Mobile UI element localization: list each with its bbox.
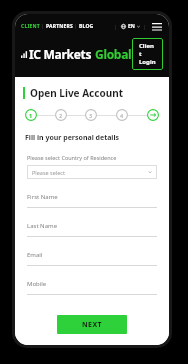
button[interactable]: PARTNERS [46,23,73,30]
staticText: Email [27,251,43,259]
button[interactable]: Last Name [27,222,157,237]
button[interactable]: Mobile [27,280,157,295]
staticText: Global [95,46,132,62]
staticText: Please select [32,169,65,176]
staticText: 2 [59,112,63,119]
staticText: Please select Country of Residence [27,154,117,161]
button[interactable]: Email [27,251,157,266]
staticText: 4 [120,112,124,119]
button[interactable]: 4 [116,109,128,121]
staticText: | [143,23,147,31]
staticText: Mobile [27,280,47,288]
button[interactable]: Menu [151,21,163,32]
staticText: Last Name [27,222,58,230]
button[interactable]: First Name [27,193,157,208]
button[interactable]: Please select [27,165,157,179]
staticText: 1 [29,112,33,119]
button[interactable]: 3 [85,109,97,121]
button[interactable]: Client Login [132,38,163,70]
button[interactable]: IC Markets [21,46,132,62]
button[interactable]: Next step [147,109,159,121]
button[interactable]: Change language [121,23,140,30]
button[interactable]: 1 [25,109,37,121]
staticText: Fill in your personal details [25,133,120,143]
staticText: NEXT [82,320,102,330]
staticText: | [73,23,79,30]
button[interactable]: CLIENT [21,23,40,30]
button[interactable]: NEXT [57,315,127,334]
staticText: 3 [89,112,93,119]
staticText: Client Login [139,42,156,66]
staticText: IC Markets [29,46,92,62]
staticText: Open Live Account [30,86,123,100]
staticText: | [114,23,118,31]
button[interactable]: BLOG [79,23,94,30]
button[interactable]: 2 [55,109,67,121]
staticText: | [40,23,46,30]
staticText: First Name [27,193,58,201]
staticText: EN [128,23,135,30]
